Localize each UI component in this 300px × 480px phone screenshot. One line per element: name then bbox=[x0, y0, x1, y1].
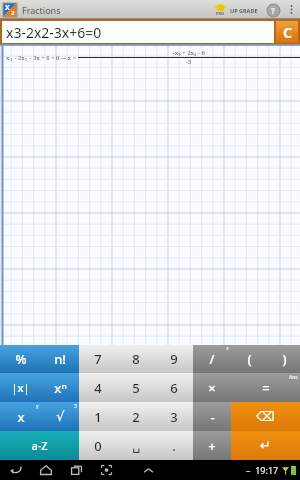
staticText: ⌫ bbox=[256, 409, 275, 424]
staticText: ↵ bbox=[260, 438, 271, 453]
staticText: ? bbox=[271, 5, 275, 16]
staticText: 9 bbox=[170, 350, 178, 368]
button[interactable]: 6 bbox=[155, 373, 193, 402]
staticText: / bbox=[209, 350, 215, 368]
button[interactable]: 1 bbox=[79, 402, 117, 431]
staticText: 1 bbox=[94, 408, 102, 426]
staticText: C bbox=[283, 23, 292, 42]
staticText: y bbox=[36, 403, 39, 410]
button[interactable]: Enter bbox=[231, 431, 300, 460]
staticText: x bbox=[17, 408, 25, 426]
button[interactable]: ) bbox=[268, 345, 300, 373]
button[interactable]: 9 bbox=[155, 345, 193, 373]
button[interactable]: 2 bbox=[117, 402, 155, 431]
button[interactable]: √ bbox=[41, 402, 79, 431]
button[interactable]: x3-2x2-3x+6=0 bbox=[2, 21, 274, 43]
button[interactable]: × bbox=[193, 373, 231, 402]
button[interactable]: . bbox=[155, 431, 193, 460]
staticText: -3 bbox=[186, 58, 192, 66]
staticText: 8 bbox=[132, 350, 140, 368]
staticText: 6 bbox=[170, 379, 178, 397]
button[interactable]: a-Z bbox=[0, 431, 79, 460]
button[interactable]: % bbox=[0, 345, 41, 373]
button[interactable]: ␣ bbox=[117, 431, 155, 460]
button[interactable]: 7 bbox=[79, 345, 117, 373]
button[interactable]: Backspace bbox=[231, 402, 300, 431]
staticText: × bbox=[208, 379, 216, 397]
button[interactable]: = bbox=[231, 373, 300, 402]
staticText: |x| bbox=[11, 380, 30, 395]
button[interactable]: Home bbox=[36, 461, 56, 479]
staticText: 7 bbox=[94, 350, 102, 368]
staticText: 3 bbox=[170, 408, 178, 426]
staticText: UP GRADE bbox=[230, 7, 258, 14]
button[interactable]: C bbox=[276, 21, 298, 43]
button[interactable]: + bbox=[193, 431, 231, 460]
staticText: Ans bbox=[289, 374, 298, 381]
button[interactable]: PRO bbox=[212, 4, 260, 16]
button[interactable]: Expand bbox=[138, 461, 158, 479]
staticText: -x₃ + 2x₂ - 6 bbox=[173, 49, 205, 57]
staticText: ) bbox=[282, 350, 287, 368]
button[interactable]: x bbox=[0, 402, 41, 431]
staticText: 2x bbox=[18, 54, 25, 62]
staticText: 2 bbox=[132, 408, 140, 426]
button[interactable]: Screenshot bbox=[96, 461, 116, 479]
staticText: x bbox=[6, 54, 10, 62]
staticText: 0 bbox=[94, 437, 102, 455]
staticText: * bbox=[226, 346, 229, 353]
button[interactable]: ( bbox=[231, 345, 268, 373]
button[interactable]: 4 bbox=[79, 373, 117, 402]
staticText: X bbox=[5, 3, 10, 13]
button[interactable]: |x| bbox=[0, 373, 41, 402]
staticText: - 3x + 6 = 0 → x = bbox=[28, 54, 78, 62]
staticText: = bbox=[262, 379, 270, 397]
staticText: - bbox=[210, 408, 215, 426]
staticText: √ bbox=[56, 409, 65, 424]
button[interactable]: - bbox=[193, 402, 231, 431]
staticText: n! bbox=[54, 350, 66, 368]
staticText: 2 bbox=[11, 9, 15, 17]
button[interactable]: n! bbox=[41, 345, 79, 373]
staticText: 5 bbox=[132, 379, 140, 397]
button[interactable]: Back bbox=[6, 461, 26, 479]
staticText: ␣ bbox=[132, 438, 141, 453]
staticText: 2 bbox=[25, 57, 28, 62]
button[interactable]: / bbox=[193, 345, 231, 373]
button[interactable]: 3 bbox=[155, 402, 193, 431]
button[interactable]: Recents bbox=[66, 461, 86, 479]
button[interactable]: Help bbox=[266, 3, 280, 17]
button[interactable]: xⁿ bbox=[41, 373, 79, 402]
staticText: 3 bbox=[10, 57, 13, 62]
button[interactable]: 0 bbox=[79, 431, 117, 460]
staticText: a-Z bbox=[31, 438, 48, 453]
staticText: 3 bbox=[74, 403, 77, 410]
staticText: Fractions bbox=[22, 4, 61, 16]
staticText: – 19:17 bbox=[246, 464, 279, 476]
staticText: + bbox=[208, 437, 216, 455]
staticText: 4 bbox=[94, 379, 102, 397]
button[interactable]: 5 bbox=[117, 373, 155, 402]
staticText: % bbox=[15, 350, 27, 368]
staticText: PRO bbox=[216, 11, 225, 16]
staticText: ( bbox=[247, 350, 252, 368]
button[interactable]: More options bbox=[285, 0, 297, 19]
staticText: x3-2x2-3x+6=0 bbox=[6, 23, 102, 42]
staticText: - bbox=[13, 54, 18, 62]
button[interactable]: 8 bbox=[117, 345, 155, 373]
staticText: xⁿ bbox=[54, 379, 67, 397]
staticText: . bbox=[172, 437, 176, 455]
